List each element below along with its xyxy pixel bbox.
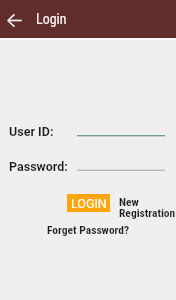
staticText: New Registration: [119, 195, 176, 220]
staticText: User ID:: [9, 124, 54, 139]
staticText: Login: [36, 11, 67, 27]
button[interactable]: Forget Password?: [47, 223, 130, 236]
staticText: Forget Password?: [47, 223, 130, 236]
button[interactable]: New Registration: [119, 195, 176, 220]
button[interactable]: LOGIN: [67, 194, 110, 212]
staticText: Password:: [9, 159, 68, 174]
staticText: LOGIN: [71, 196, 107, 211]
button[interactable]: Back: [0, 0, 30, 38]
